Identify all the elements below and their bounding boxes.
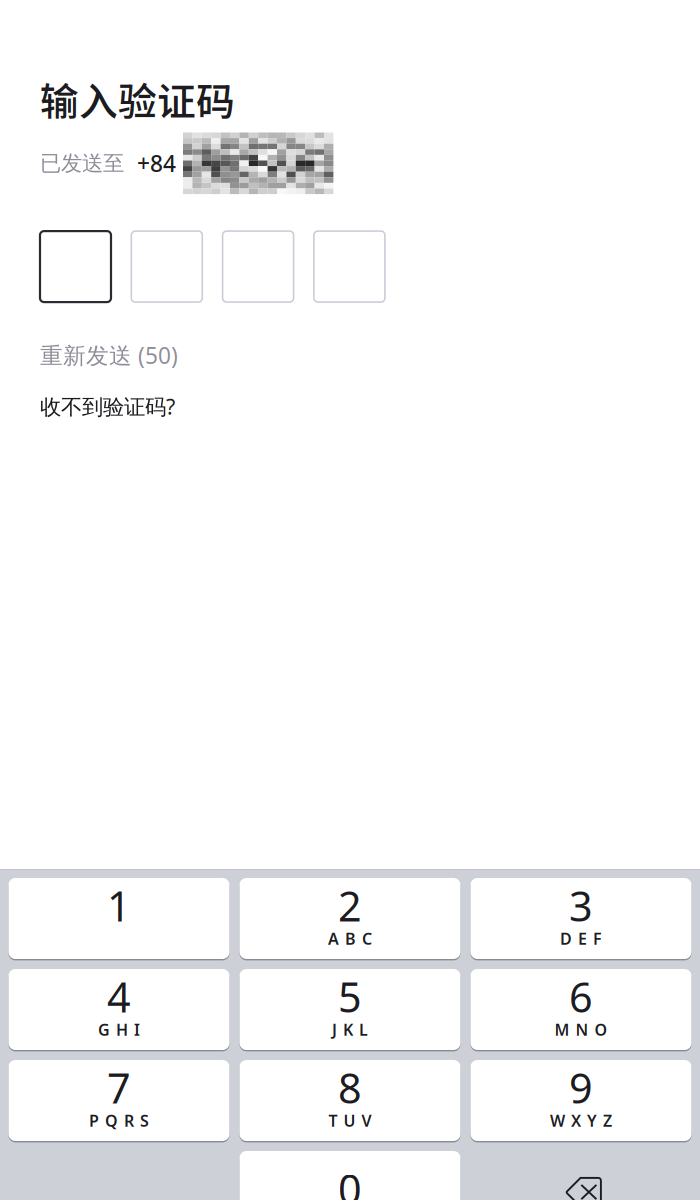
- staticText: 9: [569, 1060, 593, 1115]
- staticText: A B C: [328, 928, 372, 949]
- button[interactable]: Code digit 1: [40, 231, 111, 302]
- staticText: 8: [338, 1060, 362, 1115]
- button[interactable]: 8: [239, 1060, 460, 1141]
- button[interactable]: 2: [239, 878, 460, 959]
- staticText: J K L: [332, 1019, 368, 1040]
- button[interactable]: Code digit 2: [131, 231, 202, 302]
- staticText: 4: [107, 969, 131, 1024]
- button[interactable]: 1: [8, 878, 229, 959]
- staticText: 5: [338, 969, 362, 1024]
- button[interactable]: 3: [470, 878, 691, 959]
- staticText: G H I: [98, 1019, 140, 1040]
- button[interactable]: 5: [239, 969, 460, 1050]
- button[interactable]: 0: [239, 1151, 460, 1200]
- staticText: W X Y Z: [550, 1110, 612, 1131]
- staticText: 输入验证码: [40, 71, 235, 127]
- staticText: 3: [569, 878, 593, 933]
- staticText: +84: [137, 148, 176, 178]
- staticText: M N O: [554, 1019, 607, 1040]
- button[interactable]: Delete: [470, 1151, 691, 1200]
- button[interactable]: 4: [8, 969, 229, 1050]
- button[interactable]: 重新发送 (50): [40, 340, 178, 370]
- button[interactable]: 9: [470, 1060, 691, 1141]
- staticText: T U V: [328, 1110, 371, 1131]
- button[interactable]: Code digit 4: [314, 231, 385, 302]
- button[interactable]: Code digit 3: [223, 231, 294, 302]
- staticText: 1: [107, 878, 131, 933]
- staticText: 6: [569, 969, 593, 1024]
- staticText: 已发送至: [40, 150, 124, 176]
- staticText: 2: [338, 878, 362, 933]
- staticText: D E F: [560, 928, 602, 949]
- staticText: 收不到验证码?: [40, 392, 175, 420]
- staticText: 7: [107, 1060, 131, 1115]
- staticText: 重新发送 (50): [40, 340, 178, 370]
- staticText: 0: [338, 1161, 362, 1200]
- button[interactable]: 7: [8, 1060, 229, 1141]
- button[interactable]: 收不到验证码?: [40, 392, 175, 420]
- button[interactable]: 6: [470, 969, 691, 1050]
- staticText: P Q R S: [89, 1110, 149, 1131]
